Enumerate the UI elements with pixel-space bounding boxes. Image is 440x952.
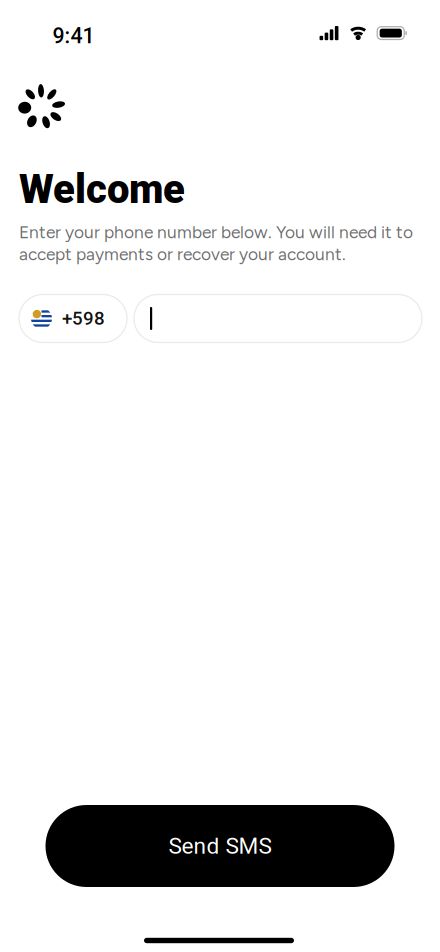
staticText: Enter your phone number below. You will … xyxy=(19,222,413,264)
staticText: +598 xyxy=(62,307,105,329)
staticText: 9:41 xyxy=(52,23,94,48)
button[interactable]: +598 xyxy=(19,294,127,342)
staticText: Send SMS xyxy=(168,833,271,859)
button[interactable]: Phone number xyxy=(134,294,422,342)
staticText: Welcome xyxy=(19,166,185,213)
button[interactable]: Send SMS xyxy=(45,805,394,887)
